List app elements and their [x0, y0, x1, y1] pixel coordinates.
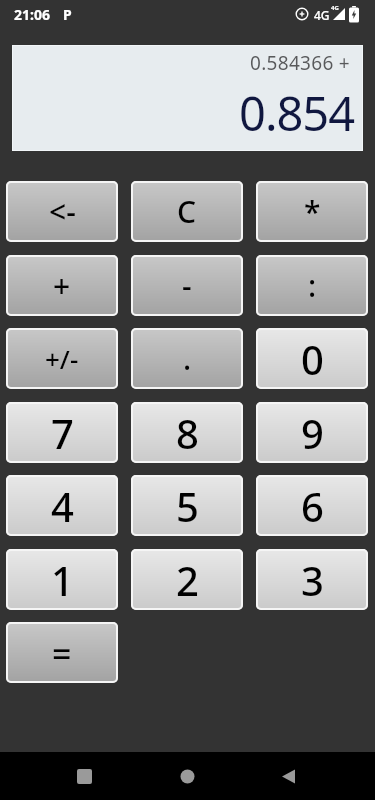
- staticText: 4G: [331, 4, 339, 12]
- staticText: 6: [301, 479, 324, 533]
- button[interactable]: 1: [6, 549, 118, 610]
- button[interactable]: 4: [6, 475, 118, 536]
- button[interactable]: <-: [6, 181, 118, 242]
- staticText: =: [52, 630, 72, 676]
- button[interactable]: 3: [256, 549, 368, 610]
- staticText: -: [182, 265, 192, 306]
- staticText: 5: [176, 479, 199, 533]
- button[interactable]: [180, 769, 195, 784]
- button[interactable]: [77, 769, 92, 784]
- button[interactable]: 9: [256, 402, 368, 463]
- staticText: 7: [51, 406, 74, 460]
- staticText: .: [183, 338, 192, 379]
- staticText: P: [63, 5, 72, 24]
- button[interactable]: :: [256, 255, 368, 316]
- button[interactable]: *: [256, 181, 368, 242]
- staticText: 0.854: [239, 81, 355, 145]
- button[interactable]: [281, 769, 296, 784]
- button[interactable]: .: [131, 328, 243, 389]
- staticText: 1: [51, 553, 74, 607]
- staticText: C: [177, 191, 197, 232]
- staticText: 9: [301, 406, 324, 460]
- staticText: +/-: [45, 341, 79, 376]
- staticText: :: [308, 265, 317, 306]
- button[interactable]: 7: [6, 402, 118, 463]
- staticText: 4: [51, 479, 74, 533]
- staticText: 4G: [314, 7, 330, 23]
- staticText: 21:06: [14, 5, 50, 24]
- staticText: *: [304, 191, 321, 232]
- button[interactable]: C: [131, 181, 243, 242]
- button[interactable]: 8: [131, 402, 243, 463]
- button[interactable]: +: [6, 255, 118, 316]
- staticText: 8: [176, 406, 199, 460]
- button[interactable]: 0: [256, 328, 368, 389]
- staticText: 0: [301, 332, 324, 386]
- staticText: +: [53, 265, 71, 306]
- button[interactable]: -: [131, 255, 243, 316]
- staticText: 3: [301, 553, 324, 607]
- button[interactable]: 6: [256, 475, 368, 536]
- staticText: <-: [49, 191, 76, 232]
- button[interactable]: =: [6, 622, 118, 683]
- button[interactable]: +/-: [6, 328, 118, 389]
- button[interactable]: 5: [131, 475, 243, 536]
- staticText: 0.584366 +: [250, 50, 350, 76]
- button[interactable]: 2: [131, 549, 243, 610]
- staticText: 2: [176, 553, 199, 607]
